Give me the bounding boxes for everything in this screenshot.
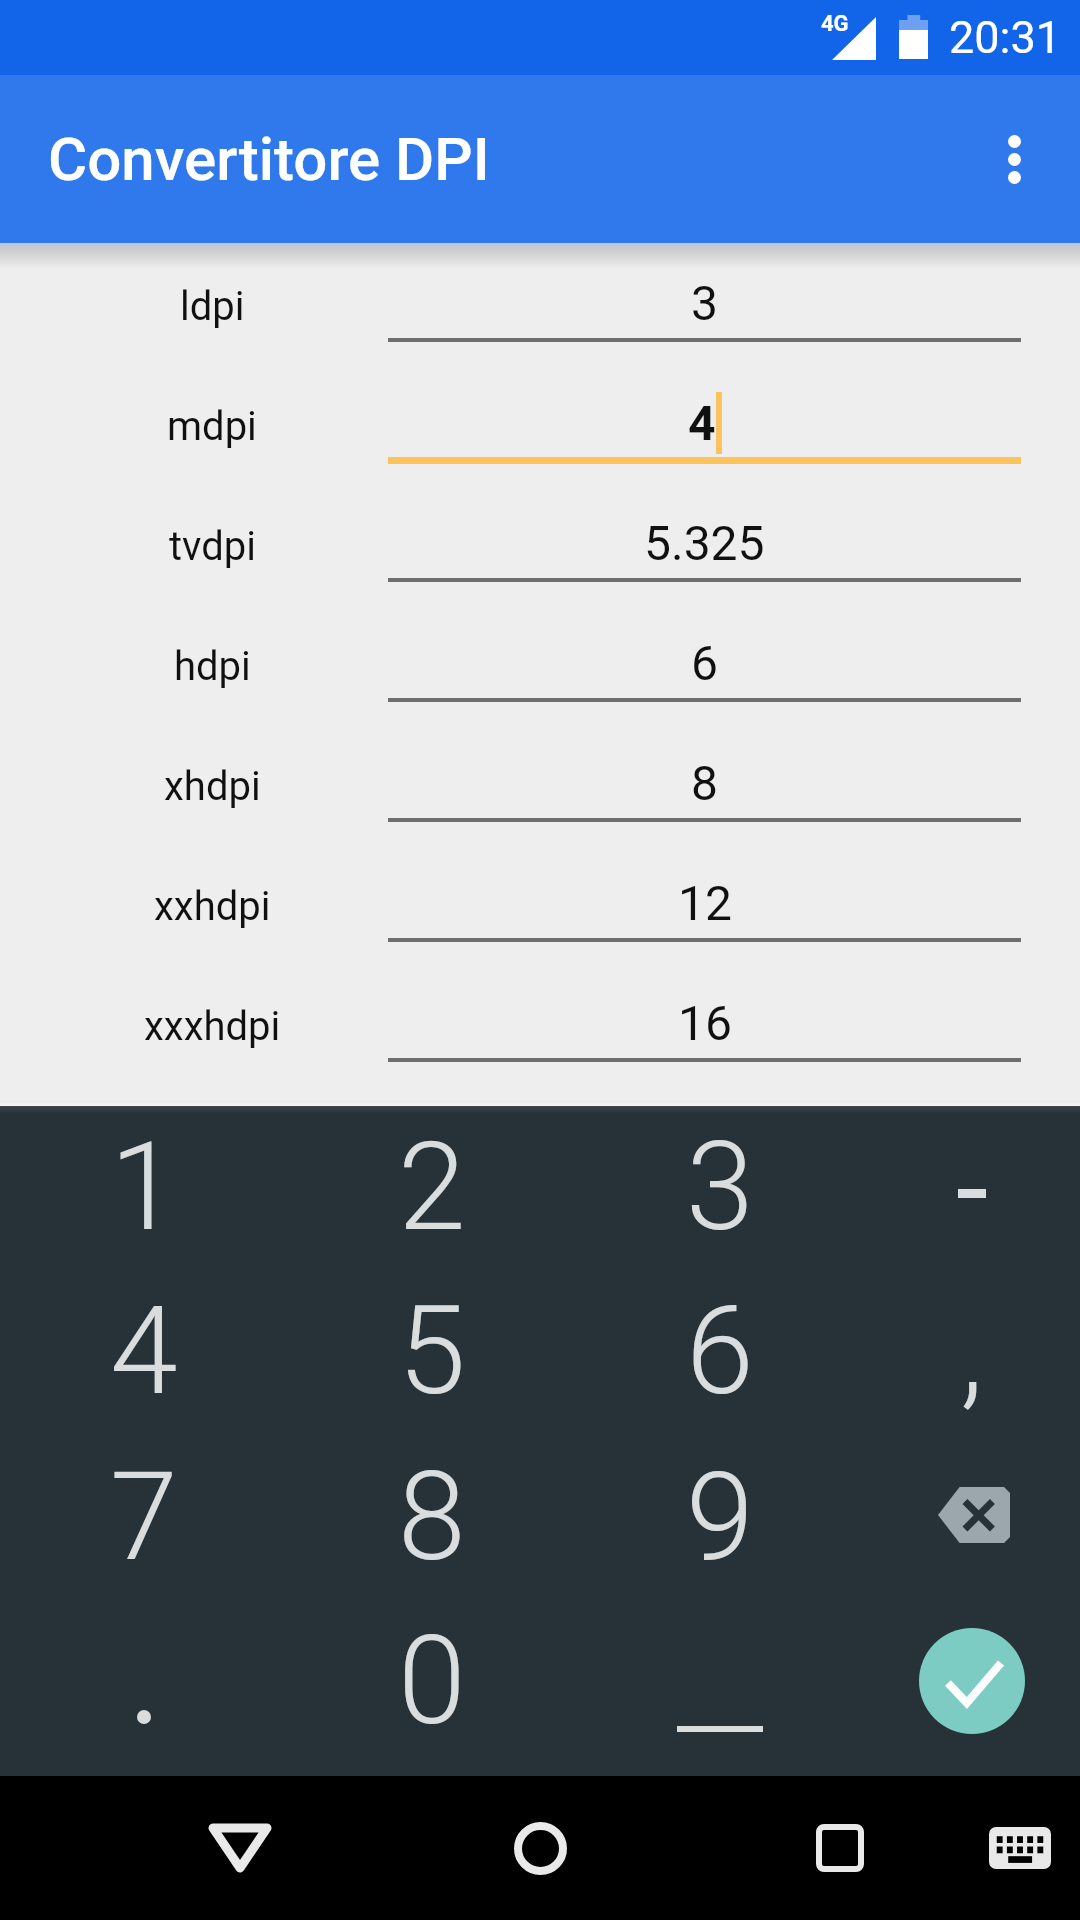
staticText: 1 <box>110 1116 178 1259</box>
staticText: 8 <box>691 755 718 811</box>
staticText: 2 <box>398 1116 466 1259</box>
button[interactable]: 9 <box>576 1440 864 1608</box>
staticText: hdpi <box>174 643 251 690</box>
button[interactable]: mdpi <box>0 363 1080 483</box>
button[interactable]: Comma <box>864 1273 1080 1440</box>
button[interactable]: xxxhdpi <box>0 963 1080 1083</box>
staticText: 5 <box>398 1280 466 1423</box>
button[interactable]: Switch keyboard <box>960 1776 1080 1920</box>
staticText: 3 <box>691 275 718 331</box>
staticText: 12 <box>678 875 732 931</box>
button[interactable]: Home <box>450 1776 630 1920</box>
button[interactable]: More options <box>966 111 1062 207</box>
button[interactable]: Backspace <box>864 1440 1080 1608</box>
button[interactable]: 0 <box>288 1608 576 1776</box>
button[interactable]: tvdpi <box>0 483 1080 603</box>
staticText: xxhdpi <box>154 883 271 930</box>
button[interactable]: ldpi <box>0 243 1080 363</box>
staticText: 0 <box>398 1610 466 1753</box>
button[interactable]: xxhdpi <box>0 843 1080 963</box>
button[interactable]: 7 <box>0 1440 288 1608</box>
staticText: 5.325 <box>644 515 765 571</box>
button[interactable]: Confirm <box>864 1608 1080 1776</box>
staticText: 9 <box>686 1446 754 1589</box>
button[interactable]: Back <box>150 1776 330 1920</box>
button[interactable]: 4 <box>0 1273 288 1440</box>
staticText: xhdpi <box>164 763 261 810</box>
staticText: 6 <box>691 635 718 691</box>
staticText: ldpi <box>180 283 245 330</box>
staticText: 7 <box>110 1446 178 1589</box>
button[interactable]: hdpi <box>0 603 1080 723</box>
button[interactable]: 5 <box>288 1273 576 1440</box>
button[interactable]: xhdpi <box>0 723 1080 843</box>
staticText: 3 <box>686 1116 754 1259</box>
staticText: 20:31 <box>949 11 1062 64</box>
button[interactable]: Recents <box>750 1776 930 1920</box>
button[interactable]: 3 <box>576 1106 864 1273</box>
staticText: mdpi <box>167 403 257 450</box>
button[interactable]: Underscore <box>576 1608 864 1776</box>
button[interactable]: 8 <box>288 1440 576 1608</box>
staticText: 4 <box>110 1280 178 1423</box>
staticText: Convertitore DPI <box>48 124 490 194</box>
button[interactable]: 2 <box>288 1106 576 1273</box>
staticText: xxxhdpi <box>144 1003 281 1050</box>
button[interactable]: Decimal point <box>0 1608 288 1776</box>
button[interactable]: Minus <box>864 1106 1080 1273</box>
staticText: 16 <box>678 995 732 1051</box>
staticText: 4 <box>688 395 716 451</box>
button[interactable]: 1 <box>0 1106 288 1273</box>
button[interactable]: 6 <box>576 1273 864 1440</box>
staticText: , <box>960 1280 984 1423</box>
staticText: 6 <box>686 1280 754 1423</box>
staticText: 4G <box>821 11 849 37</box>
staticText: tvdpi <box>169 523 256 570</box>
staticText: 8 <box>398 1446 466 1589</box>
